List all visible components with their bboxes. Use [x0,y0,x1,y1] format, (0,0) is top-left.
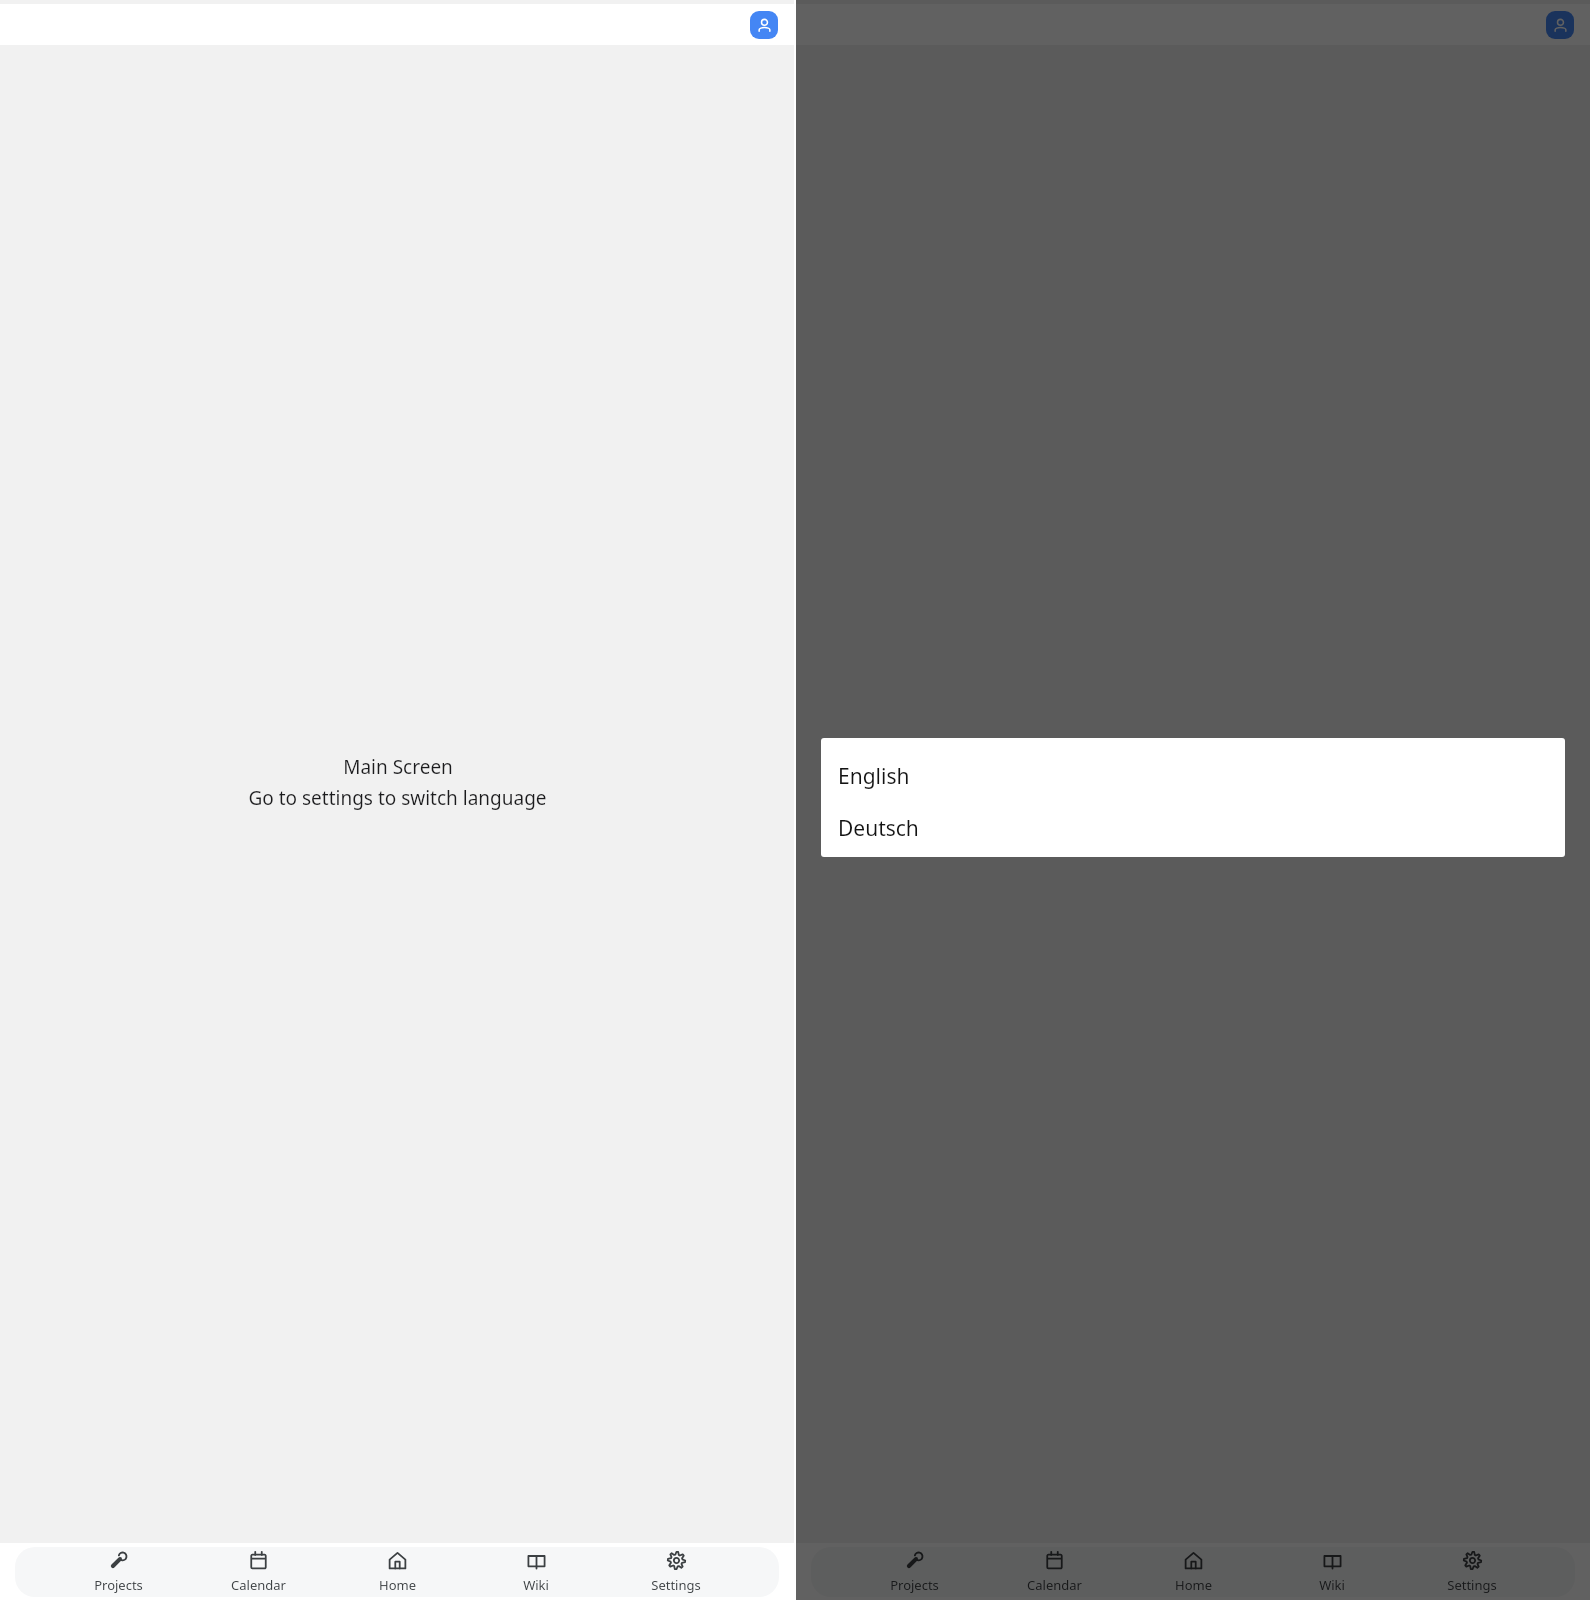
staticText: Settings [1447,1576,1497,1594]
staticText: Wiki [523,1576,549,1594]
button[interactable]: Calendar [222,1547,294,1597]
staticText: Settings [651,1576,701,1594]
button[interactable]: English [821,755,1565,797]
button[interactable]: Wiki [1296,1547,1368,1597]
button[interactable]: Account [750,11,778,39]
staticText: Projects [890,1576,939,1594]
button[interactable]: Projects [878,1547,950,1597]
button[interactable]: Calendar [1018,1547,1090,1597]
button[interactable]: Account [1546,11,1574,39]
staticText: Main Screen [343,754,453,780]
button[interactable]: Home [361,1547,433,1597]
staticText: Wiki [1319,1576,1345,1594]
button[interactable]: Projects [82,1547,154,1597]
staticText: Home [379,1576,416,1594]
staticText: English [838,762,910,791]
button[interactable]: Home [1157,1547,1229,1597]
button[interactable]: Settings [640,1547,712,1597]
button[interactable]: Deutsch [821,807,1565,849]
staticText: Deutsch [838,814,919,843]
staticText: Calendar [231,1576,286,1594]
staticText: Projects [94,1576,143,1594]
staticText: Go to settings to switch language [248,785,547,811]
button[interactable]: Settings [1436,1547,1508,1597]
staticText: Calendar [1027,1576,1082,1594]
button[interactable]: Wiki [500,1547,572,1597]
staticText: Home [1175,1576,1212,1594]
